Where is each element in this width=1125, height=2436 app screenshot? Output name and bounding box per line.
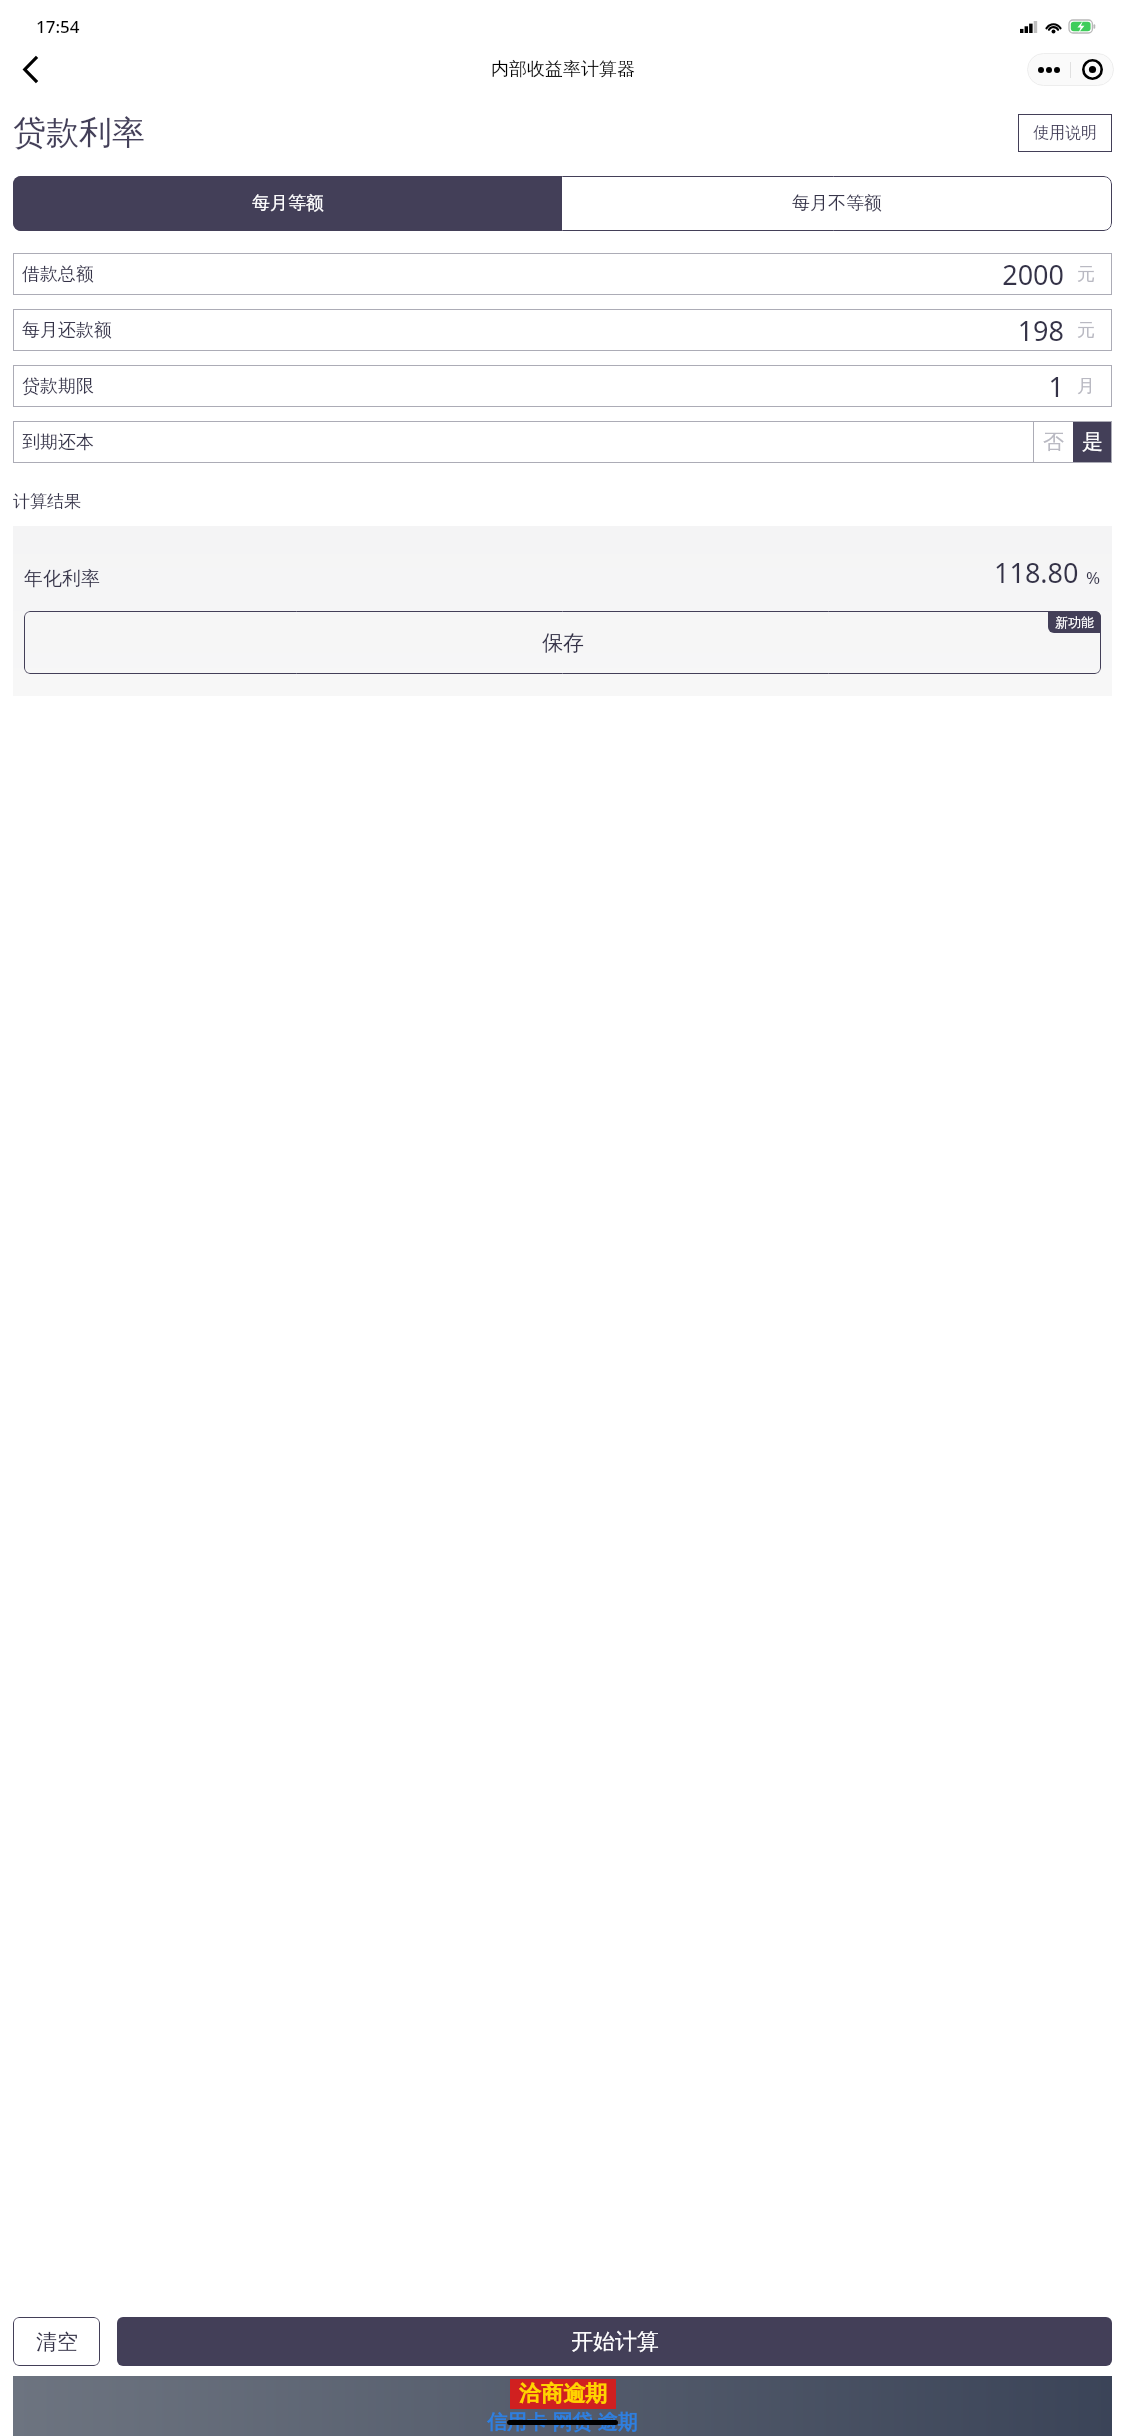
staticText: 贷款利率 — [13, 112, 145, 154]
button[interactable]: 每月还款额 — [13, 309, 1112, 351]
staticText: 元 — [1077, 319, 1095, 342]
button[interactable]: 贷款期限 — [13, 365, 1112, 407]
button[interactable]: 是 — [1073, 421, 1112, 463]
staticText: 新功能 — [1055, 614, 1094, 630]
staticText: 198 — [1017, 312, 1064, 349]
button[interactable]: 借款总额 — [13, 253, 1112, 295]
button[interactable]: Close — [1071, 53, 1114, 86]
staticText: 清空 — [36, 2329, 78, 2355]
staticText: 信用卡 网贷 逾期 — [487, 2408, 638, 2435]
staticText: 到期还本 — [22, 431, 94, 454]
staticText: 年化利率 — [24, 567, 100, 591]
button[interactable]: 每月不等额 — [562, 176, 1112, 231]
staticText: 是 — [1082, 429, 1103, 455]
staticText: 内部收益率计算器 — [491, 58, 635, 81]
staticText: 借款总额 — [22, 263, 94, 286]
staticText: 每月不等额 — [792, 192, 882, 215]
staticText: 开始计算 — [571, 2328, 659, 2356]
button[interactable]: 使用说明 — [1018, 114, 1112, 152]
button[interactable]: 保存 — [24, 611, 1101, 674]
button[interactable]: Back — [8, 48, 52, 90]
staticText: 月 — [1077, 375, 1095, 398]
button[interactable]: 到期还本 — [13, 421, 1033, 463]
staticText: 贷款期限 — [22, 375, 94, 398]
button[interactable]: 清空 — [13, 2317, 100, 2366]
staticText: 118.80 — [994, 554, 1079, 591]
staticText: 计算结果 — [13, 491, 81, 512]
button[interactable]: More — [1027, 53, 1070, 86]
button[interactable]: 每月等额 — [13, 176, 562, 231]
staticText: 否 — [1043, 429, 1064, 455]
staticText: 每月还款额 — [22, 319, 112, 342]
button[interactable]: 开始计算 — [117, 2317, 1112, 2366]
staticText: 元 — [1077, 263, 1095, 286]
staticText: 洽商逾期 — [519, 2380, 607, 2408]
staticText: % — [1086, 566, 1101, 589]
button[interactable]: 否 — [1034, 421, 1073, 463]
staticText: 17:54 — [36, 15, 80, 38]
button[interactable]: Advertisement — [13, 2376, 1112, 2436]
staticText: 2000 — [1002, 256, 1064, 293]
staticText: 使用说明 — [1033, 123, 1097, 143]
staticText: 保存 — [542, 630, 584, 656]
staticText: 每月等额 — [252, 192, 324, 215]
staticText: 1 — [1048, 368, 1064, 405]
